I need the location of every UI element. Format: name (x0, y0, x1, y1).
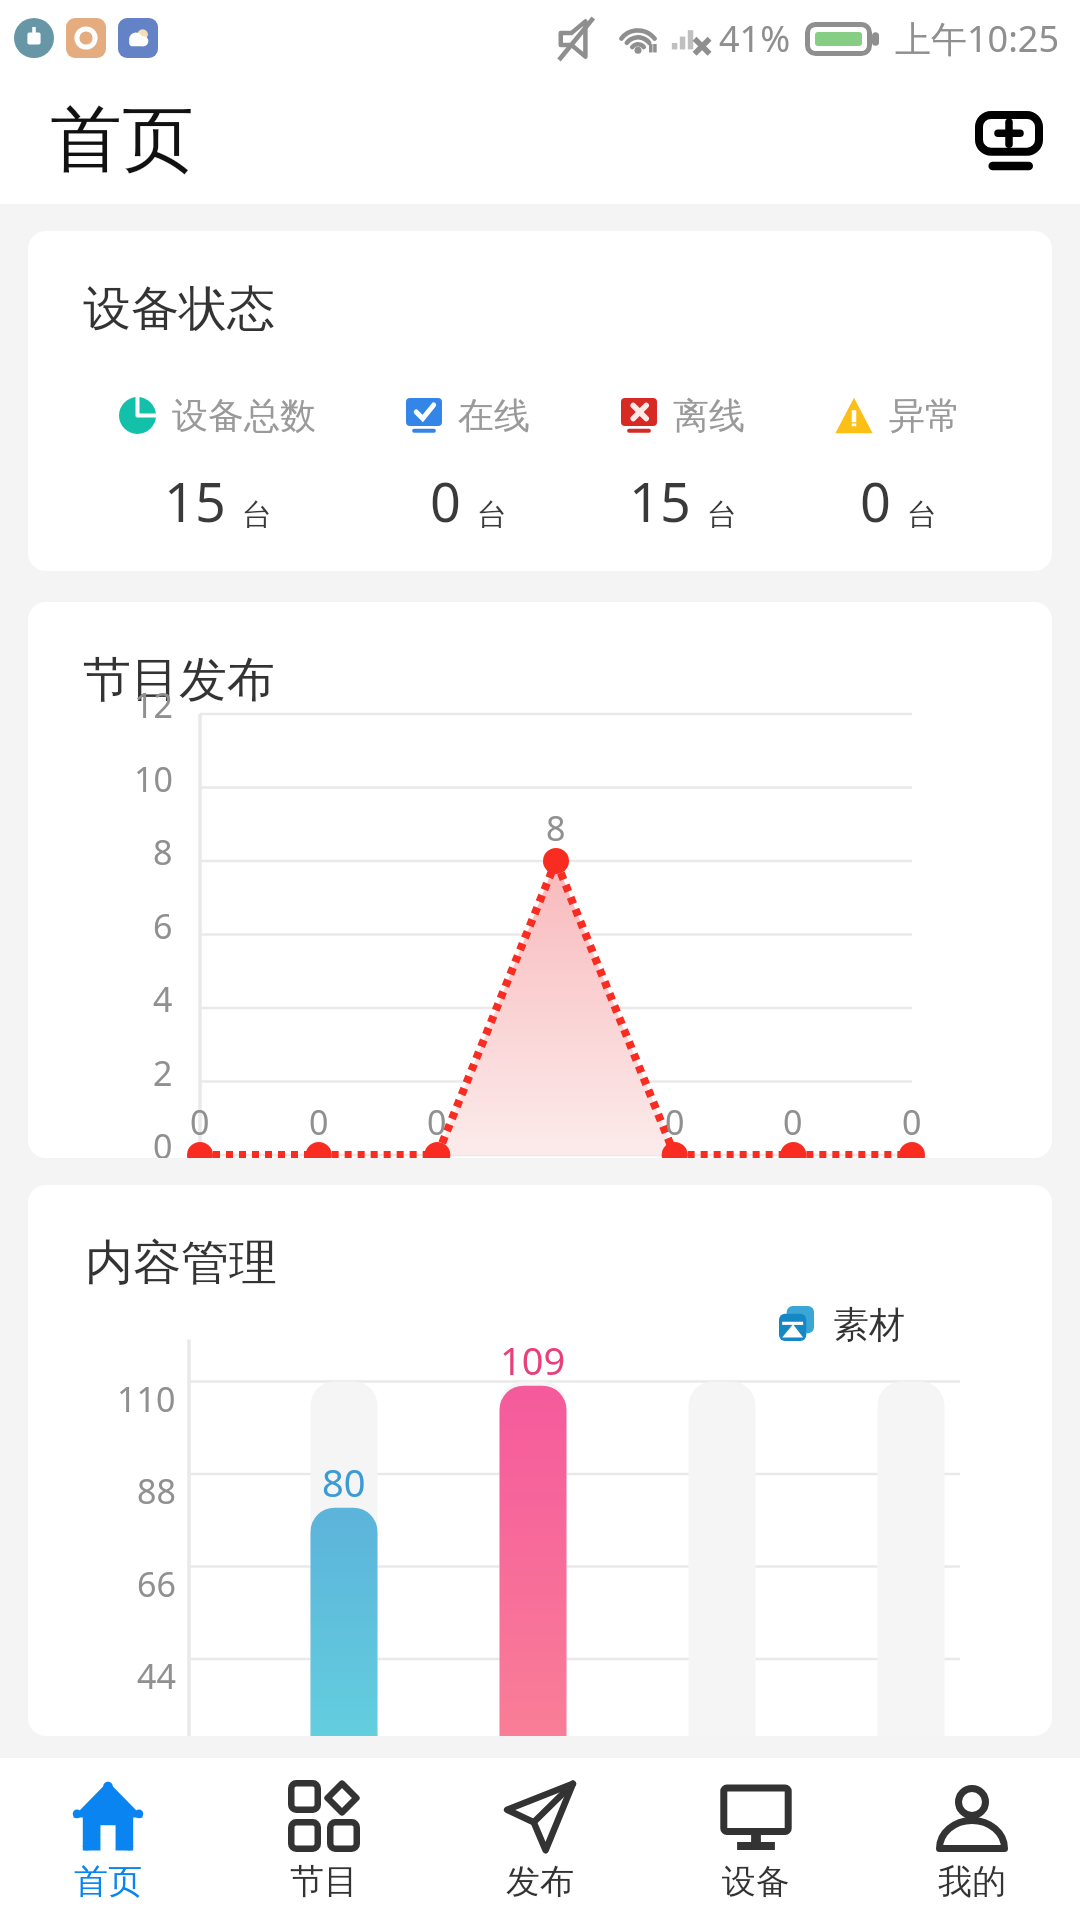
staticText: 15 (164, 464, 226, 538)
staticText: 0 (427, 1099, 447, 1145)
button[interactable]: 设备 (648, 1758, 864, 1920)
staticText: 节目发布 (83, 650, 275, 710)
staticText: 台 (707, 496, 737, 534)
staticText: 在线 (458, 393, 530, 438)
staticText: 44 (137, 1653, 176, 1699)
staticText: 0 (665, 1099, 685, 1145)
button[interactable]: Add screen (959, 90, 1059, 190)
staticText: 80 (322, 1456, 366, 1506)
staticText: 上午10:25 (895, 14, 1060, 63)
staticText: 0 (190, 1099, 210, 1145)
staticText: 0 (783, 1099, 803, 1145)
staticText: 台 (242, 496, 272, 534)
staticText: 66 (137, 1561, 176, 1607)
staticText: 15 (629, 464, 691, 538)
staticText: 0 (430, 464, 461, 538)
staticText: 88 (137, 1468, 176, 1514)
staticText: 0 (860, 464, 891, 538)
staticText: 设备总数 (172, 393, 316, 438)
staticText: 8 (546, 805, 566, 851)
staticText: 2 (153, 1050, 173, 1096)
staticText: 首页 (50, 95, 194, 186)
staticText: 我的 (938, 1860, 1006, 1903)
staticText: 8 (153, 829, 173, 875)
staticText: 台 (907, 496, 937, 534)
staticText: 6 (153, 903, 173, 949)
staticText: 异常 (889, 393, 961, 438)
staticText: 台 (477, 496, 507, 534)
staticText: 110 (117, 1376, 176, 1422)
staticText: 内容管理 (85, 1233, 277, 1293)
button[interactable]: 首页 (0, 1758, 216, 1920)
staticText: 12 (134, 682, 173, 728)
staticText: 设备 (722, 1860, 790, 1903)
staticText: 0 (309, 1099, 329, 1145)
staticText: 0 (902, 1099, 922, 1145)
button[interactable]: 发布 (432, 1758, 648, 1920)
staticText: 发布 (506, 1860, 574, 1903)
staticText: 素材 (833, 1302, 905, 1347)
button[interactable]: 节目 (216, 1758, 432, 1920)
staticText: 首页 (74, 1860, 142, 1903)
staticText: 10 (134, 756, 173, 802)
button[interactable]: 我的 (864, 1758, 1080, 1920)
staticText: 0 (153, 1123, 173, 1158)
staticText: 节目 (290, 1860, 358, 1903)
staticText: 41% (719, 14, 791, 63)
staticText: 离线 (673, 393, 745, 438)
staticText: 设备状态 (83, 279, 275, 339)
staticText: 109 (500, 1334, 566, 1384)
staticText: 4 (153, 976, 173, 1022)
